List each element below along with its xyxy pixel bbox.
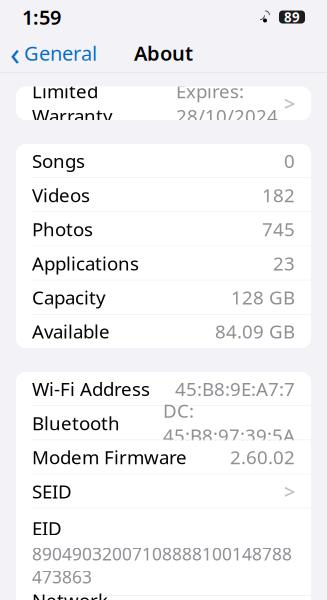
- staticText: EID: [32, 515, 62, 540]
- staticText: 0: [284, 148, 295, 173]
- staticText: DC:45:B8:97:39:5A: [163, 398, 295, 448]
- staticText: 128 GB: [231, 285, 295, 310]
- staticText: 745: [262, 217, 295, 241]
- button[interactable]: ‹: [0, 34, 107, 72]
- staticText: Songs: [32, 148, 85, 173]
- staticText: >: [284, 478, 295, 504]
- staticText: 89: [284, 8, 300, 26]
- staticText: Videos: [32, 183, 90, 207]
- button[interactable]: Available: [16, 315, 311, 348]
- staticText: 182: [262, 183, 295, 207]
- button[interactable]: SEID: [16, 474, 311, 508]
- staticText: Photos: [32, 217, 93, 241]
- staticText: Modem Firmware: [32, 445, 187, 469]
- staticText: Applications: [32, 251, 139, 276]
- staticText: >: [284, 90, 295, 117]
- button[interactable]: Wi-Fi Address: [16, 372, 311, 406]
- staticText: 2.60.02: [230, 445, 295, 469]
- button[interactable]: Limited Warranty: [16, 87, 311, 120]
- button[interactable]: EID: [16, 508, 311, 595]
- staticText: 23: [273, 251, 295, 276]
- staticText: Expires: 28/10/2024: [176, 79, 278, 128]
- staticText: Limited Warranty: [32, 79, 113, 128]
- button[interactable]: Capacity: [16, 280, 311, 314]
- staticText: Wi-Fi Address: [32, 376, 150, 401]
- button[interactable]: Modem Firmware: [16, 440, 311, 474]
- staticText: ‹: [10, 32, 20, 74]
- staticText: General: [24, 40, 97, 66]
- staticText: 84.09 GB: [215, 319, 295, 344]
- staticText: SEID: [32, 479, 72, 504]
- staticText: Capacity: [32, 285, 106, 310]
- staticText: About: [134, 40, 193, 66]
- button[interactable]: Photos: [16, 212, 311, 246]
- button[interactable]: Bluetooth: [16, 406, 311, 440]
- button[interactable]: Network Provider Lock: [16, 596, 311, 600]
- staticText: Network Provider Lock: [32, 588, 150, 600]
- button[interactable]: Videos: [16, 178, 311, 212]
- button[interactable]: Applications: [16, 246, 311, 280]
- staticText: Bluetooth: [32, 411, 120, 435]
- staticText: 89049032007108888100148788473863: [32, 542, 292, 588]
- button[interactable]: Songs: [16, 144, 311, 178]
- staticText: Available: [32, 319, 110, 344]
- staticText: ◞◝: [260, 7, 270, 21]
- staticText: DC:45:B8:9E:A7:76: [175, 352, 295, 426]
- staticText: 1:59: [22, 4, 61, 30]
